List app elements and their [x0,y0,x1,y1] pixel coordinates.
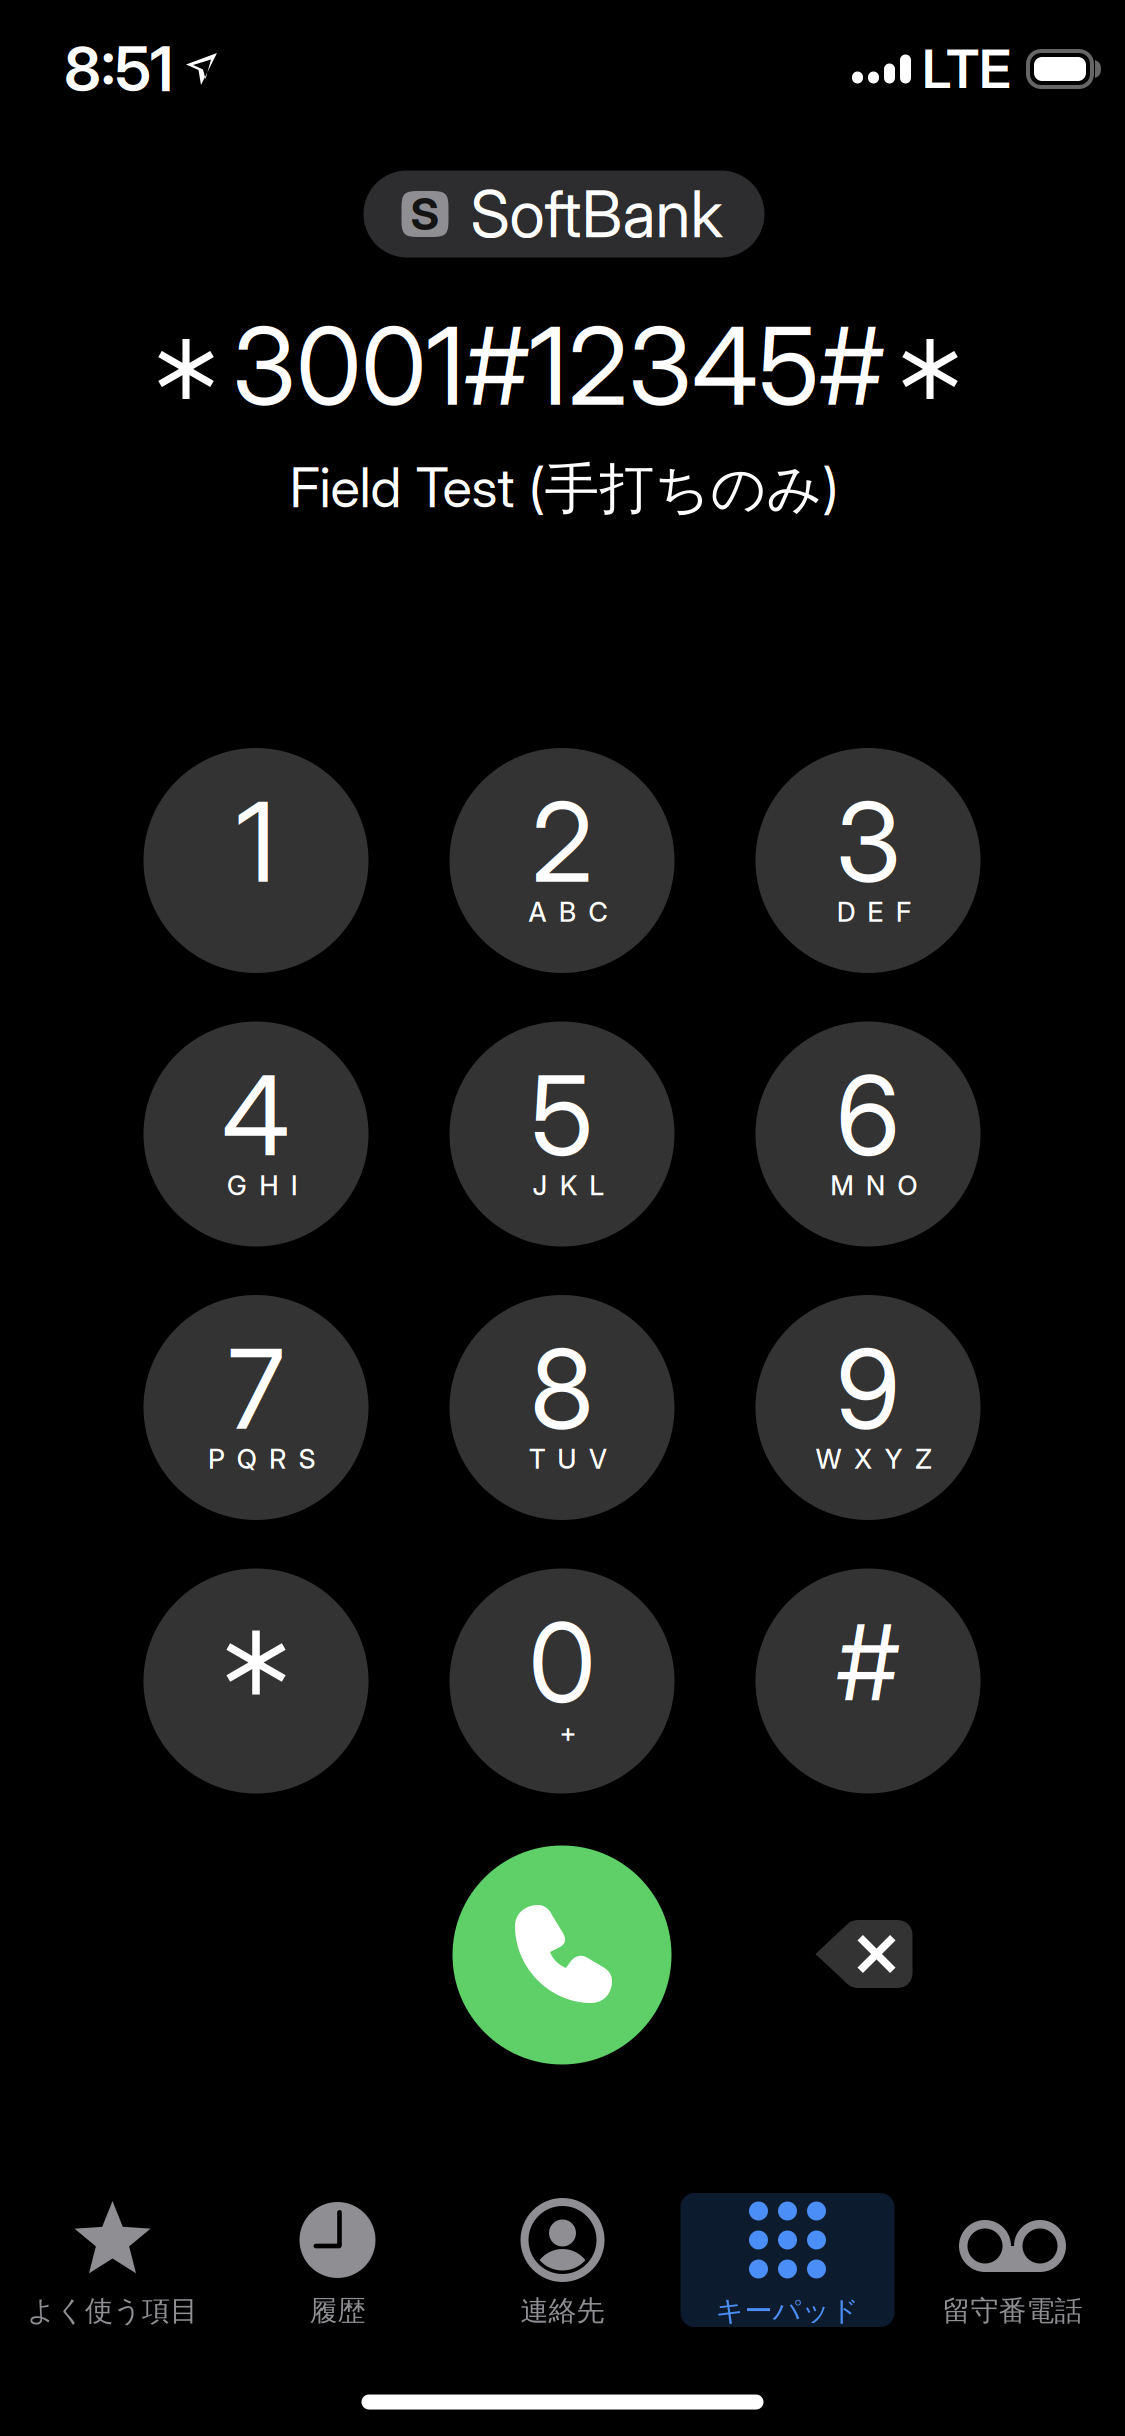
button[interactable]: よく使う項目 [0,2190,225,2330]
staticText: + [559,1716,576,1749]
staticText: キーパッド [715,2293,859,2329]
button[interactable]: 連絡先 [450,2190,675,2330]
button[interactable]: 8 TUV [449,1295,674,1520]
button[interactable]: Call [452,1845,671,2064]
staticText: JKL [532,1169,603,1202]
staticText: 4 [222,1049,290,1182]
staticText: 留守番電話 [942,2293,1082,2329]
staticText: 8 [530,1323,594,1455]
button[interactable]: Delete [814,1918,913,1990]
staticText: ABC [528,896,607,928]
staticText: LTE [922,37,1011,101]
staticText: # [837,1600,899,1725]
staticText: GHI [227,1169,297,1202]
button[interactable]: 2 ABC [449,748,674,973]
staticText: Field Test (手打ちのみ) [289,454,838,524]
staticText: WXYZ [816,1443,932,1475]
button[interactable]: 履歴 [225,2190,450,2330]
button[interactable]: 0 plus [449,1568,674,1793]
staticText: 3001#12345# [232,301,884,431]
button[interactable]: 9 WXYZ [755,1295,980,1520]
button[interactable]: 4 GHI [143,1021,368,1246]
staticText: 6 [836,1049,900,1182]
staticText: 履歴 [309,2293,365,2329]
staticText: DEF [837,896,911,928]
staticText: 5 [530,1049,593,1182]
button[interactable]: pound [755,1568,980,1793]
staticText: PQRS [208,1443,316,1475]
staticText: 8:51 [64,32,173,106]
button[interactable]: 3 DEF [755,748,980,973]
staticText: S [410,187,439,241]
button[interactable]: 1 [143,748,368,973]
staticText: 2 [531,776,592,908]
staticText: 9 [836,1323,900,1455]
button[interactable]: キーパッド [675,2190,900,2330]
button[interactable]: 留守番電話 [900,2190,1125,2330]
staticText: 3 [835,776,900,908]
staticText: SoftBank [470,175,722,253]
staticText: 0 [528,1596,595,1729]
staticText: 連絡先 [520,2293,604,2329]
button[interactable]: star [143,1568,368,1793]
button[interactable]: 7 PQRS [143,1295,368,1520]
staticText: 7 [228,1323,284,1455]
staticText: MNO [830,1169,917,1202]
staticText: よく使う項目 [27,2293,198,2329]
button[interactable]: 6 MNO [755,1021,980,1246]
staticText: 1 [236,776,276,908]
button[interactable]: 5 JKL [449,1021,674,1246]
staticText: TUV [529,1443,607,1475]
